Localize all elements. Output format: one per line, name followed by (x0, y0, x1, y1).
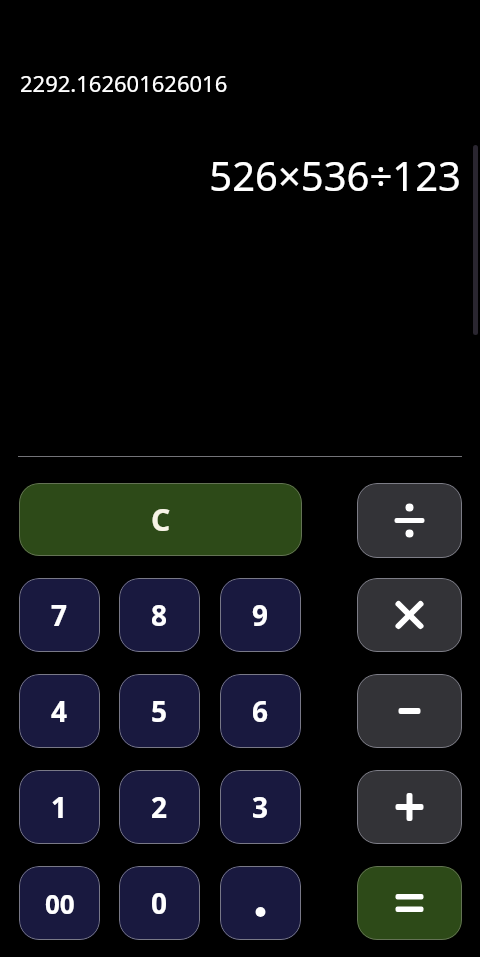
button[interactable]: Equals (357, 866, 462, 940)
staticText: 8 (151, 596, 168, 634)
button[interactable]: Add (357, 770, 462, 844)
staticText: 2292.162601626016 (20, 68, 228, 98)
button[interactable]: Multiply (357, 578, 462, 652)
staticText: 7 (51, 596, 68, 634)
button[interactable]: 9 (220, 578, 301, 652)
staticText: 6 (252, 692, 269, 730)
button[interactable]: Decimal point (220, 866, 301, 940)
staticText: 526×536÷123 (0, 148, 461, 202)
button[interactable]: Divide (357, 483, 462, 558)
button[interactable]: 4 (19, 674, 100, 748)
button[interactable]: 7 (19, 578, 100, 652)
button[interactable]: 6 (220, 674, 301, 748)
button[interactable]: 1 (19, 770, 100, 844)
staticText: C (151, 499, 171, 540)
button[interactable]: 00 (19, 866, 100, 940)
button[interactable]: 2 (119, 770, 200, 844)
button[interactable]: 8 (119, 578, 200, 652)
staticText: 4 (51, 692, 68, 730)
button[interactable]: 5 (119, 674, 200, 748)
staticText: 5 (151, 692, 168, 730)
staticText: 0 (151, 884, 168, 922)
staticText: 00 (45, 886, 75, 921)
button[interactable]: 0 (119, 866, 200, 940)
staticText: 9 (252, 596, 269, 634)
button[interactable]: 3 (220, 770, 301, 844)
staticText: 3 (252, 788, 269, 826)
button[interactable]: Subtract (357, 674, 462, 748)
staticText: 2 (151, 788, 168, 826)
staticText: 1 (51, 788, 68, 826)
button[interactable]: C (19, 483, 302, 556)
